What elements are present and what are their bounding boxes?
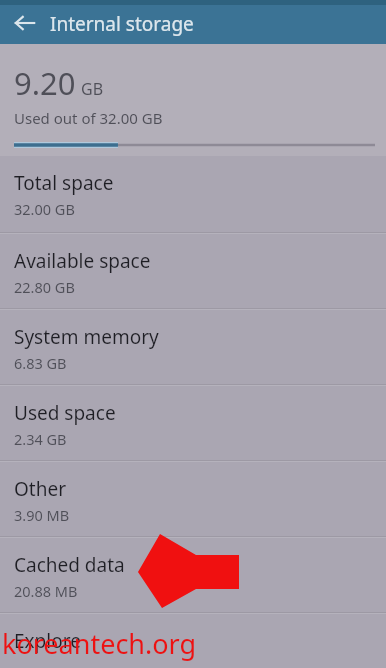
button[interactable]: Cached data — [0, 536, 386, 612]
staticText: Total space — [14, 170, 114, 196]
button[interactable]: Used space — [0, 384, 386, 460]
button[interactable]: Other — [0, 460, 386, 536]
staticText: Other — [14, 476, 67, 502]
staticText: Available space — [14, 248, 151, 274]
staticText: Used out of 32.00 GB — [14, 108, 163, 128]
staticText: 6.83 GB — [14, 353, 67, 373]
staticText: Explore — [14, 628, 81, 654]
button[interactable]: Navigate up — [6, 4, 44, 42]
staticText: 22.80 GB — [14, 277, 75, 297]
staticText: Cached data — [14, 552, 125, 578]
staticText: GB — [81, 78, 104, 100]
staticText: 3.90 MB — [14, 505, 70, 525]
button[interactable]: Total space — [0, 156, 386, 232]
staticText: Used space — [14, 400, 116, 426]
staticText: Internal storage — [50, 11, 194, 37]
staticText: koreantech.org — [2, 625, 197, 662]
staticText: 9.20 — [14, 62, 76, 104]
staticText: System memory — [14, 324, 159, 350]
staticText: 20.88 MB — [14, 581, 78, 601]
button[interactable]: Available space — [0, 232, 386, 308]
staticText: 2.34 GB — [14, 429, 67, 449]
button[interactable]: Explore — [0, 612, 386, 668]
staticText: 32.00 GB — [14, 199, 75, 219]
button[interactable]: System memory — [0, 308, 386, 384]
